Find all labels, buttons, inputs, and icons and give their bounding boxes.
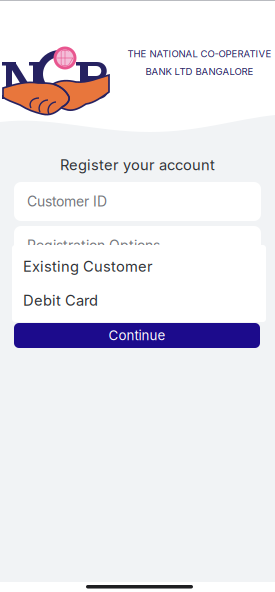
staticText: THE NATIONAL CO-OPERATIVE	[127, 48, 271, 60]
staticText: Register your account	[60, 156, 215, 174]
button[interactable]: Registration Options	[14, 226, 261, 265]
staticText: BANK LTD BANGALORE	[145, 66, 253, 77]
button[interactable]: Existing Customer	[12, 249, 266, 283]
staticText: Debit Card	[23, 292, 98, 309]
staticText: Existing Customer	[23, 258, 153, 275]
button[interactable]: Continue	[14, 323, 260, 348]
staticText: Registration Options	[27, 237, 160, 254]
button[interactable]: Debit Card	[12, 283, 266, 317]
staticText: Continue	[108, 327, 165, 343]
button[interactable]: Customer ID	[14, 182, 261, 221]
staticText: Customer ID	[27, 193, 107, 210]
